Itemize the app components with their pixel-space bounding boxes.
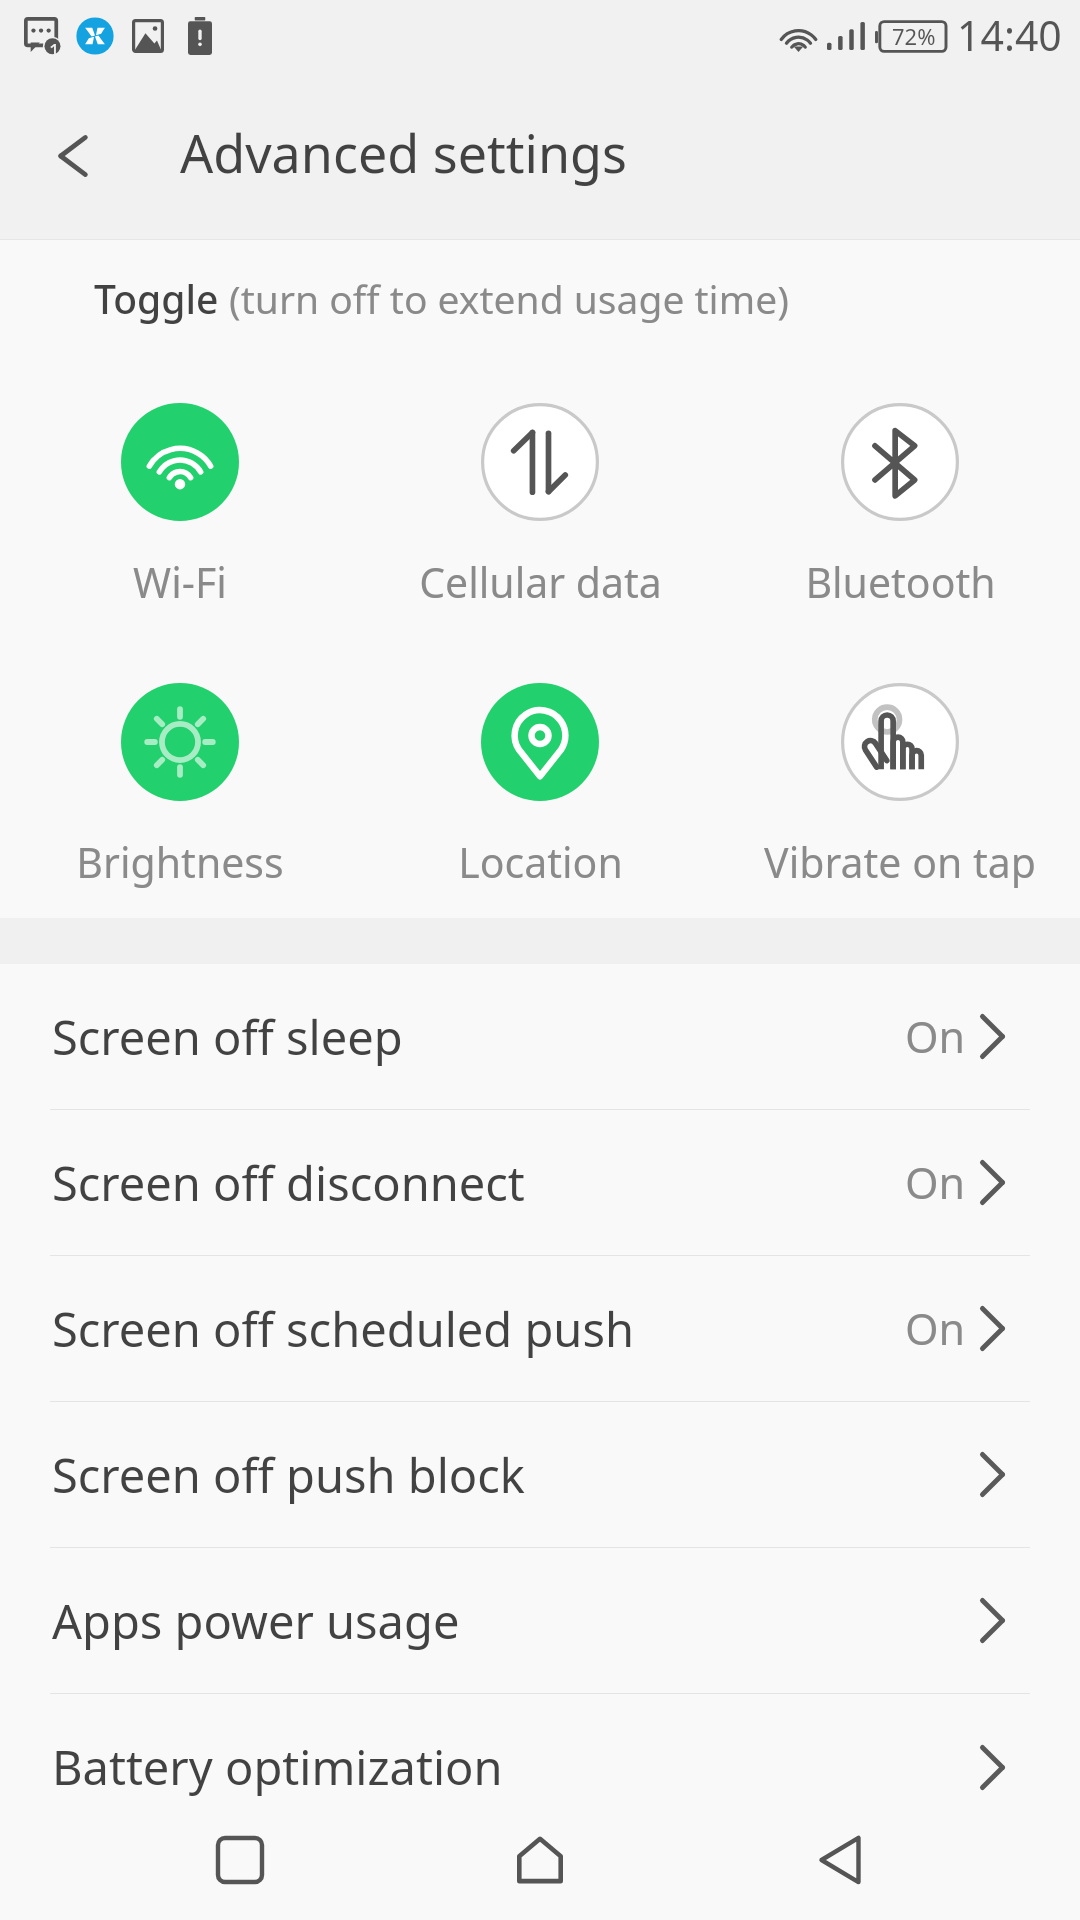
staticText: 14:40 [957,7,1062,63]
staticText: Wi-Fi [133,554,227,610]
button[interactable]: Bluetooth [720,403,1080,610]
staticText: Apps power usage [52,1589,460,1653]
button[interactable]: Wi-Fi [0,403,360,610]
staticText: Battery optimization [52,1735,503,1799]
button[interactable]: Recents [180,1800,300,1920]
staticText: Screen off disconnect [52,1151,525,1215]
button[interactable]: Back [780,1800,900,1920]
staticText: Brightness [76,834,284,890]
staticText: 1 [49,38,60,64]
staticText: Screen off sleep [52,1005,403,1069]
staticText: Cellular data [419,554,662,610]
button[interactable]: Screen off scheduled push [0,1256,1080,1402]
staticText: On [905,1299,966,1358]
staticText: Advanced settings [180,117,627,188]
button[interactable]: Screen off push block [0,1402,1080,1548]
staticText: Bluetooth [805,554,996,610]
staticText: (turn off to extend usage time) [229,272,789,325]
staticText: Location [458,834,623,890]
button[interactable]: Screen off disconnect [0,1110,1080,1256]
staticText: Screen off push block [52,1443,525,1507]
button[interactable]: Cellular data [360,403,720,610]
button[interactable]: Back [36,118,112,194]
button[interactable]: Screen off sleep [0,964,1080,1110]
staticText: 72% [892,21,936,51]
button[interactable]: Location [360,683,720,890]
staticText: On [905,1153,966,1212]
staticText: Toggle [94,272,229,325]
staticText: Screen off scheduled push [52,1297,634,1361]
button[interactable]: Apps power usage [0,1548,1080,1694]
staticText: On [905,1007,966,1066]
button[interactable]: Home [480,1800,600,1920]
staticText: Vibrate on tap [764,834,1036,890]
button[interactable]: Brightness [0,683,360,890]
button[interactable]: Battery optimization [0,1694,1080,1840]
button[interactable]: Vibrate on tap [720,683,1080,890]
